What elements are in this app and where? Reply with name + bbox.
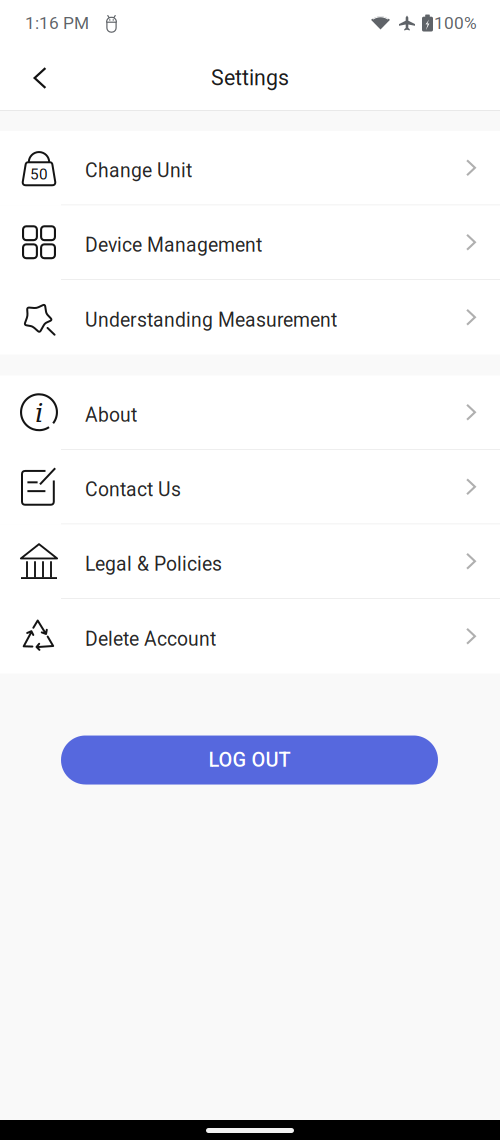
staticText: 1:16 PM [25, 13, 89, 33]
button[interactable]: 50 [0, 131, 500, 205]
staticText: Settings [211, 65, 289, 90]
button[interactable]: Understanding Measurement [0, 280, 500, 354]
staticText: Contact Us [85, 478, 181, 501]
staticText: Legal & Policies [85, 553, 222, 576]
staticText: Delete Account [85, 628, 216, 651]
staticText: 50 [30, 165, 48, 183]
button[interactable]: i [0, 375, 500, 450]
staticText: LOG OUT [208, 748, 290, 772]
button[interactable]: LOG OUT [61, 735, 438, 784]
staticText: About [85, 404, 137, 427]
button[interactable]: Contact Us [0, 450, 500, 524]
staticText: Understanding Measurement [85, 309, 337, 332]
staticText: Change Unit [85, 159, 192, 182]
button[interactable]: Delete Account [0, 599, 500, 673]
button[interactable]: Legal & Policies [0, 524, 500, 599]
staticText: Device Management [85, 234, 262, 257]
button[interactable]: Back [18, 56, 62, 100]
staticText: 100% [434, 13, 477, 33]
button[interactable]: Device Management [0, 205, 500, 280]
staticText: i [35, 397, 44, 428]
